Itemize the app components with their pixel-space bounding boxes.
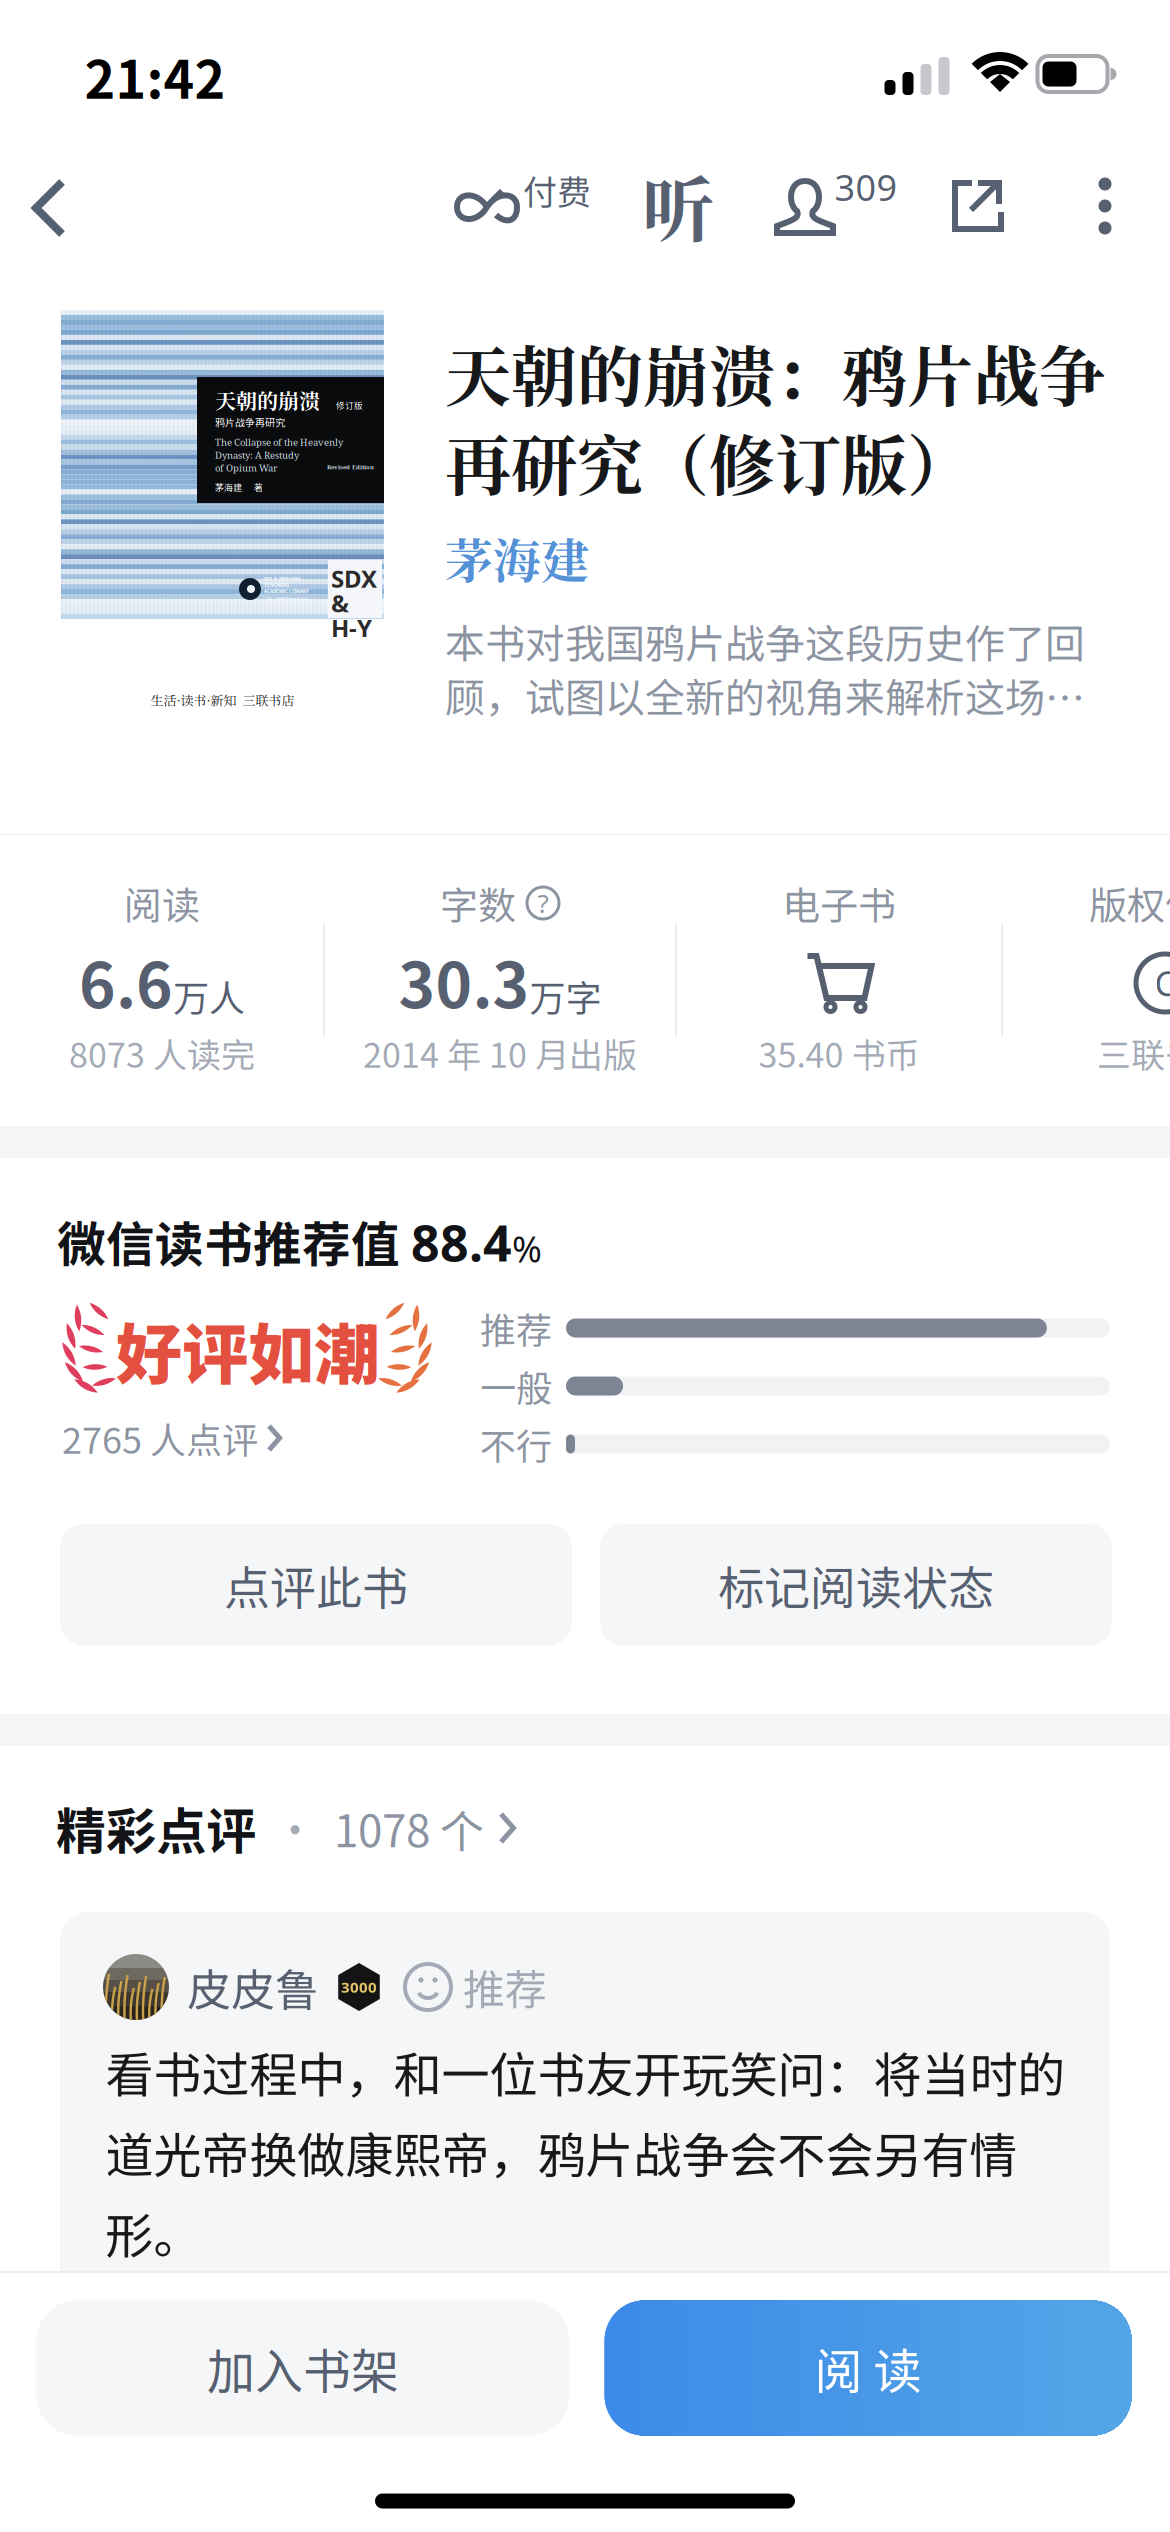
- staticText: C: [1154, 960, 1170, 1006]
- staticText: 天朝的崩溃: [215, 385, 320, 415]
- button[interactable]: 2765 人点评: [62, 1410, 292, 1466]
- button[interactable]: 点评此书: [60, 1524, 572, 1646]
- button[interactable]: 听书: [626, 140, 730, 270]
- button[interactable]: 付费内容: [452, 130, 602, 260]
- staticText: 一般: [480, 1360, 552, 1412]
- staticText: 点评此书: [224, 1552, 408, 1618]
- staticText: 万人: [173, 970, 245, 1022]
- staticText: 21:42: [84, 38, 225, 114]
- staticText: ?: [537, 885, 548, 921]
- staticText: 35.40 书币: [758, 1028, 919, 1078]
- staticText: 好评如潮: [116, 1302, 380, 1398]
- staticText: ·: [256, 1798, 334, 1858]
- staticText: 309: [834, 162, 897, 211]
- staticText: 30.3: [398, 936, 529, 1026]
- staticText: 电子书: [782, 875, 896, 930]
- staticText: 万字: [529, 970, 601, 1022]
- button[interactable]: 返回: [0, 143, 109, 273]
- button[interactable]: 字数: [324, 835, 676, 1125]
- staticText: Dynasty: A Restudy: [215, 448, 299, 461]
- staticText: ACADEMIC LIBRARY: [264, 588, 309, 595]
- staticText: H-Y: [331, 611, 372, 644]
- staticText: 微信读书推荐值: [57, 1206, 411, 1276]
- staticText: 2765 人点评: [62, 1412, 258, 1464]
- staticText: 看书过程中，和一位书友开玩笑问：将当时的 道光帝换做康熙帝，鸦片战争会不会另有情…: [105, 2037, 1065, 2267]
- button[interactable]: 阅 读: [604, 2300, 1131, 2435]
- staticText: 1078 个: [334, 1796, 484, 1860]
- staticText: 88.4: [411, 1208, 512, 1276]
- staticText: 不行: [480, 1418, 552, 1470]
- button[interactable]: 电子书: [676, 835, 1002, 1125]
- staticText: 8073 人读完: [69, 1028, 255, 1078]
- staticText: 三联书店: [1097, 1028, 1170, 1078]
- button[interactable]: 分享: [923, 141, 1033, 271]
- staticText: 鸦片战争再研究: [215, 415, 285, 429]
- staticText: 付费: [523, 165, 591, 215]
- button[interactable]: 在读人数 309: [764, 130, 912, 260]
- staticText: 修订版: [336, 399, 363, 411]
- staticText: 生活·读书·新知 三联书店: [150, 691, 294, 709]
- staticText: %: [512, 1224, 542, 1273]
- staticText: 精彩点评: [56, 1792, 256, 1864]
- staticText: 阅 读: [814, 2333, 921, 2403]
- staticText: 天朝的崩溃：鸦片战争 再研究（修订版）: [445, 325, 1105, 509]
- button[interactable]: 阅读: [0, 835, 324, 1125]
- staticText: 茅海建 著: [215, 480, 263, 493]
- staticText: 本书对我国鸦片战争这段历史作了回 顾，试图以全新的视角来解析这场…: [445, 612, 1085, 724]
- staticText: &: [331, 587, 349, 619]
- staticText: 听: [642, 153, 714, 257]
- staticText: 加入书架: [207, 2333, 399, 2403]
- button[interactable]: 精彩点评: [56, 1793, 696, 1863]
- staticText: 6.6: [79, 936, 173, 1026]
- button[interactable]: 版权信息: [1002, 835, 1170, 1125]
- staticText: 字数: [440, 875, 516, 930]
- staticText: 推荐: [463, 1957, 547, 2017]
- staticText: 阅读: [124, 875, 200, 930]
- staticText: SDX & HARVARD-YENCHING: [264, 576, 301, 588]
- staticText: The Collapse of the Heavenly: [215, 436, 343, 448]
- button[interactable]: 更多: [1055, 141, 1155, 271]
- staticText: 皮皮鲁: [187, 1955, 319, 2019]
- staticText: 2014 年 10 月出版: [363, 1028, 637, 1078]
- staticText: 3000: [341, 1977, 377, 1997]
- staticText: 三联·哈佛燕京学术丛书: [264, 596, 308, 602]
- button[interactable]: 加入书架: [36, 2300, 569, 2435]
- button[interactable]: 标记阅读状态: [600, 1524, 1112, 1646]
- staticText: 标记阅读状态: [718, 1552, 994, 1618]
- staticText: of Opium War: [215, 461, 277, 474]
- staticText: 推荐: [480, 1302, 552, 1354]
- staticText: 版权信息: [1089, 875, 1170, 930]
- staticText: 茅海建: [445, 523, 589, 592]
- staticText: SDX: [331, 562, 377, 595]
- staticText: Revised Edition: [327, 463, 374, 471]
